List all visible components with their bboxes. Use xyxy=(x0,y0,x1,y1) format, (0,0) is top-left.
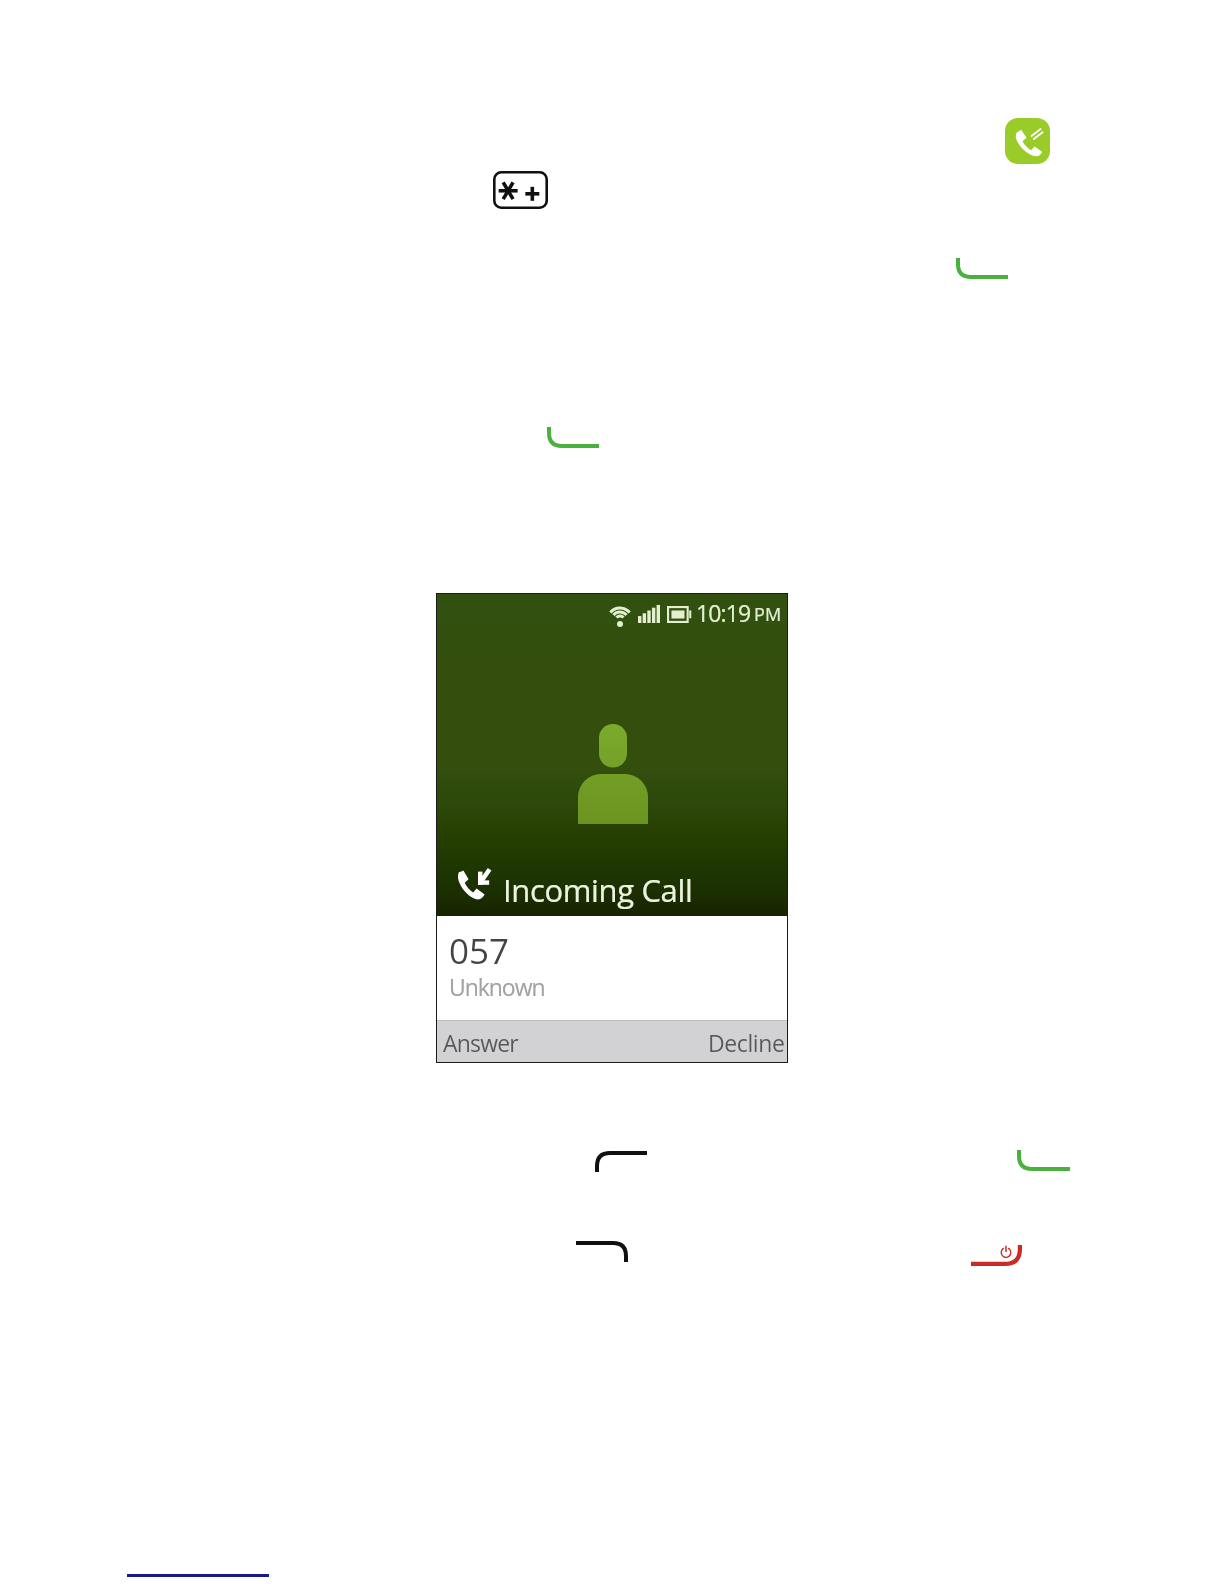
button[interactable]: Star plus key xyxy=(493,171,548,209)
button[interactable]: Answer xyxy=(437,1020,612,1062)
staticText: Decline xyxy=(708,1027,785,1058)
staticText: Incoming Call xyxy=(503,869,693,911)
staticText: 10:19 xyxy=(696,597,751,628)
button[interactable]: Phone app icon xyxy=(1005,118,1050,164)
button[interactable]: Power off xyxy=(971,1245,1022,1266)
button[interactable]: Decline xyxy=(612,1020,787,1062)
staticText: Answer xyxy=(443,1027,518,1058)
staticText: Unknown xyxy=(449,971,545,1002)
staticText: 057 xyxy=(449,927,510,975)
staticText: PM xyxy=(754,602,782,627)
button[interactable]: 057 xyxy=(437,916,787,1020)
